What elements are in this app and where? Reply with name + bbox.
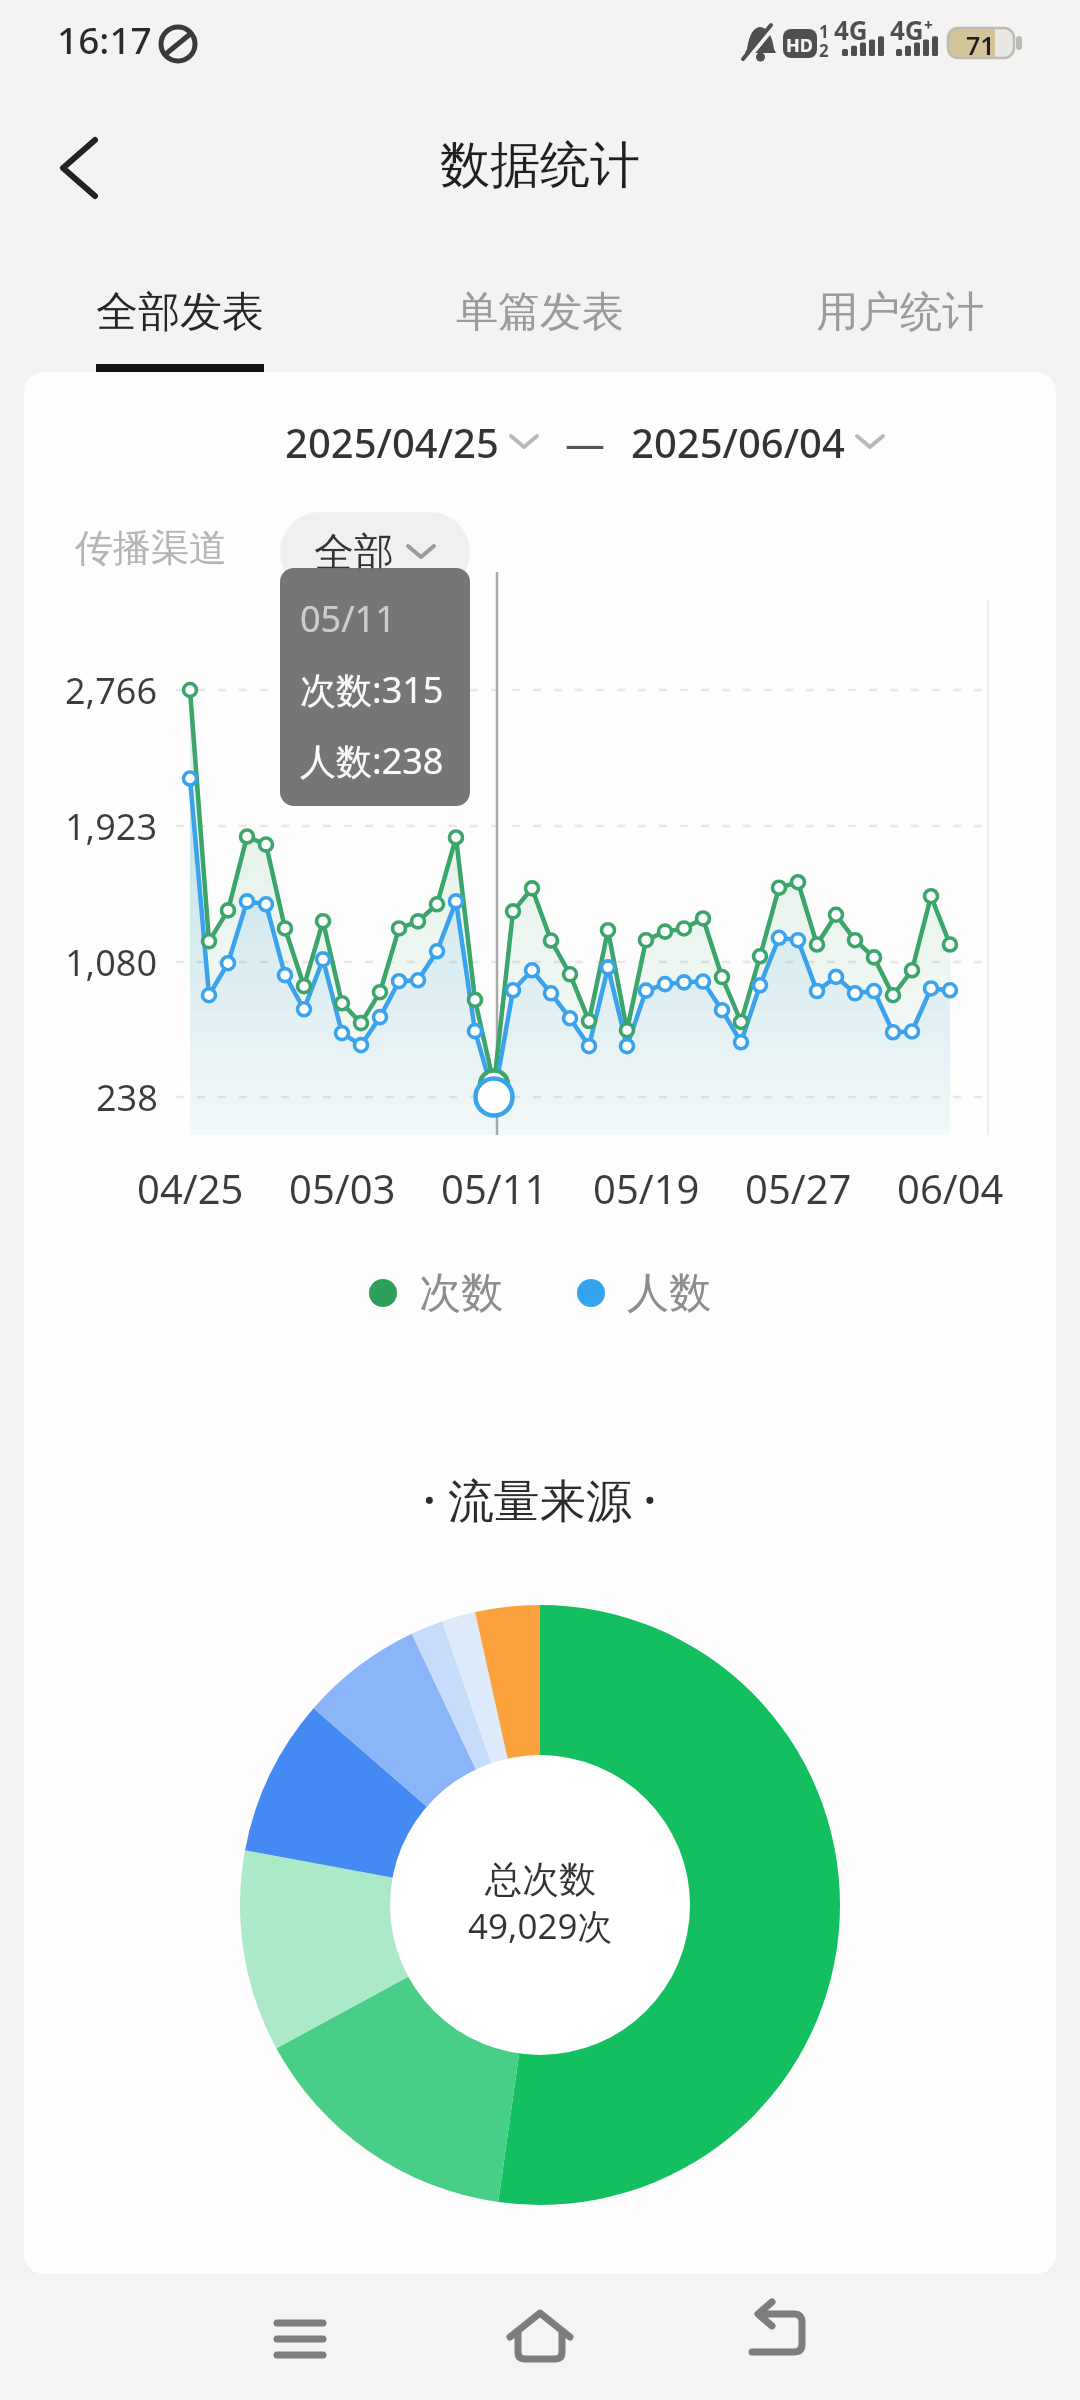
staticText: 次数:315 bbox=[300, 665, 444, 714]
staticText: 用户统计 bbox=[816, 286, 984, 339]
staticText: 05/11 bbox=[441, 1161, 548, 1215]
staticText: 06/04 bbox=[897, 1161, 1004, 1215]
button[interactable] bbox=[720, 2271, 840, 2400]
staticText: 4G bbox=[834, 12, 868, 47]
staticText: 4G⁺ bbox=[890, 12, 934, 47]
staticText: 总次数 bbox=[485, 1856, 596, 1903]
button[interactable]: 用户统计 bbox=[720, 286, 1080, 366]
staticText: 2 bbox=[819, 39, 829, 62]
button[interactable]: 单篇发表 bbox=[360, 286, 720, 366]
button[interactable]: 2025/06/04 bbox=[631, 415, 885, 469]
staticText: · 流量来源 · bbox=[423, 1468, 657, 1531]
staticText: 04/25 bbox=[137, 1161, 244, 1215]
button[interactable]: 2025/04/25 bbox=[285, 415, 539, 469]
button[interactable] bbox=[240, 2271, 360, 2400]
staticText: 05/19 bbox=[593, 1161, 700, 1215]
button[interactable] bbox=[480, 2271, 600, 2400]
staticText: 238 bbox=[96, 1073, 158, 1122]
button[interactable]: 全部 bbox=[280, 512, 470, 592]
staticText: 传播渠道 bbox=[75, 524, 227, 572]
staticText: 05/03 bbox=[289, 1161, 396, 1215]
staticText: 次数 bbox=[419, 1267, 503, 1320]
button[interactable] bbox=[40, 128, 120, 208]
staticText: 2025/04/25 bbox=[285, 415, 499, 469]
staticText: 单篇发表 bbox=[456, 286, 624, 339]
staticText: 全部 bbox=[314, 527, 394, 577]
staticText: 全部发表 bbox=[96, 286, 264, 339]
staticText: 71 bbox=[966, 28, 995, 62]
staticText: 49,029次 bbox=[468, 1902, 613, 1950]
staticText: 05/27 bbox=[745, 1161, 852, 1215]
staticText: — bbox=[565, 415, 605, 469]
staticText: 1,080 bbox=[65, 938, 158, 987]
staticText: 05/11 bbox=[300, 594, 396, 643]
staticText: 2,766 bbox=[65, 666, 158, 715]
staticText: 1,923 bbox=[65, 802, 158, 851]
staticText: 16:17 bbox=[57, 14, 152, 64]
staticText: 1 bbox=[819, 20, 829, 43]
staticText: 2025/06/04 bbox=[631, 415, 845, 469]
staticText: 数据统计 bbox=[440, 134, 640, 197]
staticText: HD bbox=[786, 33, 813, 58]
staticText: 人数:238 bbox=[300, 736, 444, 785]
button[interactable]: 全部发表 bbox=[0, 286, 360, 366]
staticText: 人数 bbox=[627, 1267, 711, 1320]
